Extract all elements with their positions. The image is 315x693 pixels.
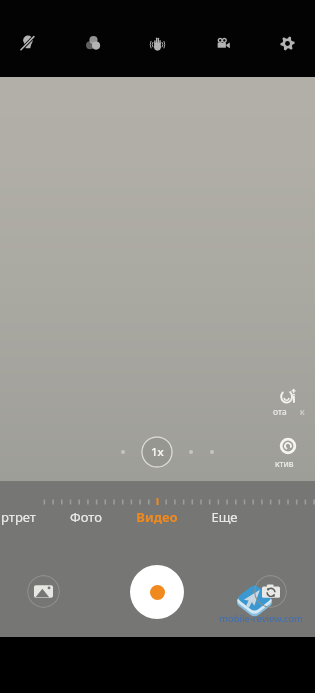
button[interactable]: ртрет	[0, 505, 51, 528]
staticText: ртрет	[1, 508, 36, 526]
button[interactable]: Фото	[53, 505, 119, 528]
button[interactable]: 1x	[141, 436, 173, 468]
button[interactable]: Settings	[270, 26, 304, 60]
button[interactable]: Еще	[191, 505, 257, 528]
staticText: к	[300, 406, 305, 418]
button[interactable]: Filters	[76, 26, 110, 60]
button[interactable]: Flash off	[10, 26, 44, 60]
button[interactable]: Switch camera	[254, 575, 287, 608]
staticText: Видео	[136, 508, 178, 526]
button[interactable]: Stabilization	[140, 26, 174, 60]
button[interactable]: Video mode	[206, 26, 240, 60]
staticText: mobile-review.com	[219, 612, 303, 625]
button[interactable]: ктив	[272, 434, 312, 474]
button[interactable]: Record video	[130, 565, 184, 619]
staticText: Еще	[211, 508, 238, 526]
button[interactable]: Видео	[124, 505, 190, 528]
staticText: Фото	[70, 508, 102, 526]
button[interactable]: Gallery	[27, 575, 60, 608]
staticText: 1x	[151, 444, 164, 460]
button[interactable]: ота	[272, 384, 312, 424]
staticText: ота	[273, 406, 287, 418]
staticText: ктив	[275, 458, 294, 470]
